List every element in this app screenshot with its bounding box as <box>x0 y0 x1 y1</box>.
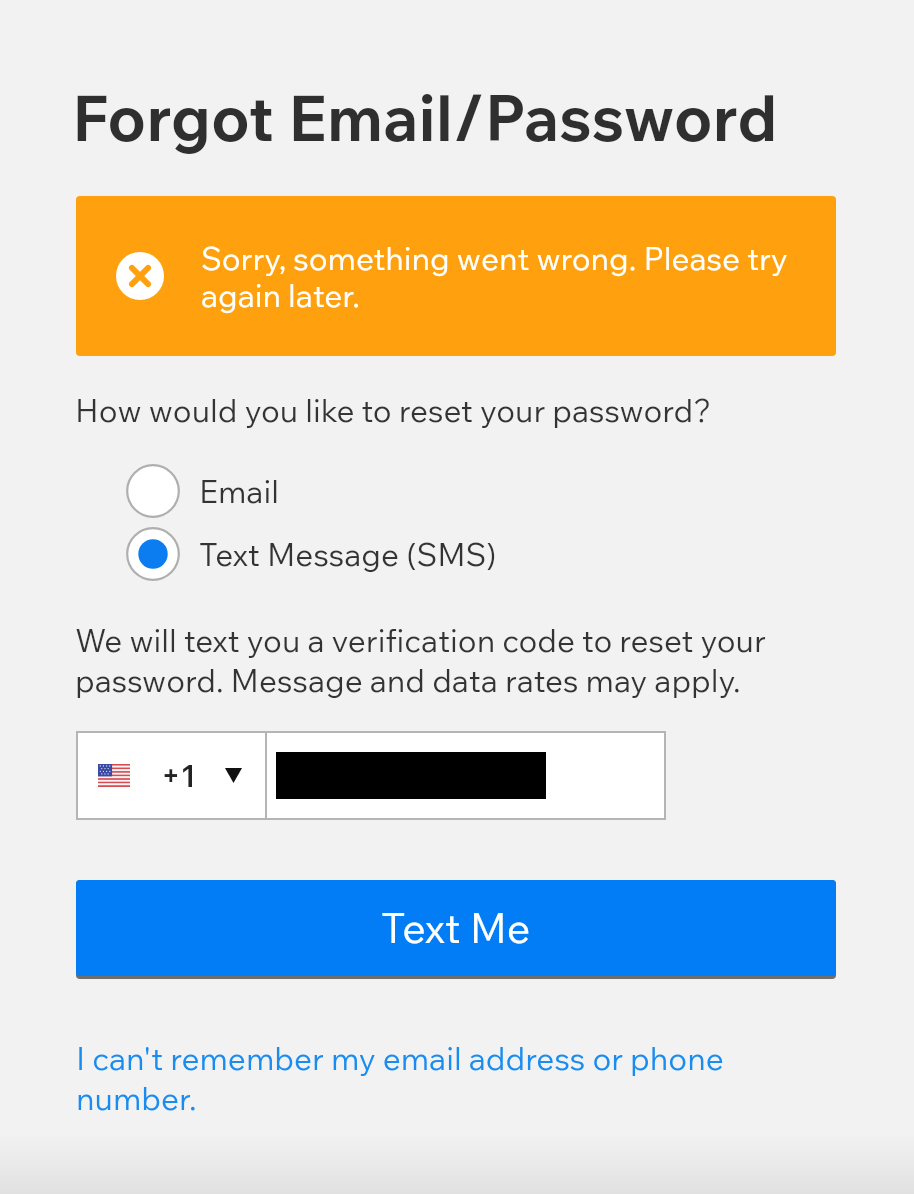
staticText: We will text you a verification code to … <box>75 620 775 700</box>
staticText: +1 <box>161 756 197 795</box>
button[interactable]: I can't remember my email address or pho… <box>76 1038 756 1118</box>
button[interactable]: Text Me <box>76 880 836 976</box>
staticText: Email <box>199 471 279 511</box>
button[interactable]: Sorry, something went wrong. Please try … <box>76 196 836 356</box>
button[interactable]: Select country code <box>78 733 265 818</box>
staticText: Text Me <box>381 902 531 954</box>
staticText: How would you like to reset your passwor… <box>75 390 712 430</box>
staticText: Text Message (SMS) <box>199 534 497 574</box>
button[interactable] <box>267 733 664 818</box>
button[interactable]: Email <box>126 464 279 518</box>
staticText: Forgot Email/Password <box>72 77 778 156</box>
staticText: Sorry, something went wrong. Please try … <box>201 238 836 315</box>
button[interactable]: Text Message (SMS) <box>126 527 497 581</box>
